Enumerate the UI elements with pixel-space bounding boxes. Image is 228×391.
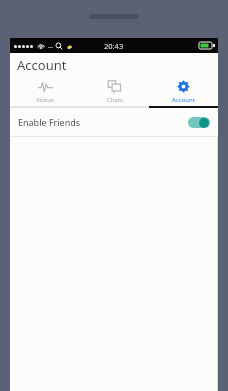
- other: Enable Friends toggle: [188, 117, 210, 128]
- staticText: Account: [172, 96, 195, 104]
- button[interactable]: Status: [10, 76, 80, 106]
- staticText: Account: [17, 56, 67, 74]
- button[interactable]: Enable Friends: [10, 108, 218, 136]
- staticText: 20:43: [104, 41, 124, 51]
- staticText: Status: [36, 96, 54, 104]
- staticText: ...: [48, 42, 53, 50]
- button[interactable]: Account: [149, 76, 218, 106]
- button[interactable]: Chats: [80, 76, 149, 106]
- staticText: Enable Friends: [18, 116, 81, 128]
- staticText: Chats: [107, 96, 123, 104]
